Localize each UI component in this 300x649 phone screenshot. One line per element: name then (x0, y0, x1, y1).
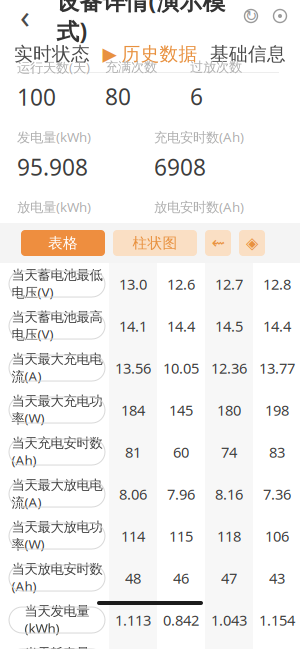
staticText: 当天放电安时数(Ah) (11, 561, 102, 595)
staticText: ‹ (20, 0, 30, 37)
staticText: 设备详情(演示模式) (56, 0, 225, 46)
staticText: 放电安时数(Ah) (154, 198, 244, 216)
staticText: 1.154 (259, 610, 295, 630)
staticText: ◈ (246, 234, 258, 252)
staticText: 118 (217, 526, 241, 546)
staticText: 历史数据 (121, 42, 197, 65)
staticText: 14.4 (263, 316, 291, 336)
staticText: 7.36 (263, 484, 291, 504)
staticText: 6908 (154, 152, 206, 182)
staticText: 43 (269, 568, 285, 588)
staticText: 当天最大放电功率(W) (11, 519, 102, 553)
staticText: 106 (265, 526, 289, 546)
staticText: 当天发电量(kWh) (24, 603, 89, 637)
staticText: 过放次数 (190, 59, 242, 75)
staticText: ⇜ (211, 234, 224, 252)
staticText: 81 (125, 442, 141, 462)
staticText: 当天蓄电池最高电压(V) (11, 309, 102, 343)
staticText: ▶ (102, 43, 116, 65)
button[interactable]: 分享 (205, 230, 231, 256)
staticText: 74 (221, 442, 237, 462)
staticText: 表格 (48, 234, 78, 252)
staticText: 114 (121, 526, 145, 546)
staticText: 当天最大充电功率(W) (11, 393, 102, 427)
staticText: 放电量(kWh) (17, 198, 91, 216)
staticText: 83 (269, 442, 285, 462)
staticText: 柱状图 (132, 234, 177, 252)
button[interactable]: ▶ (101, 36, 199, 72)
staticText: 95.908 (17, 152, 88, 182)
staticText: 13.56 (115, 358, 151, 378)
staticText: 1.043 (211, 610, 247, 630)
staticText: 14.5 (215, 316, 243, 336)
staticText: 180 (217, 400, 241, 420)
staticText: 184 (121, 400, 145, 420)
staticText: 198 (265, 400, 289, 420)
staticText: 46 (173, 568, 189, 588)
staticText: 运行天数(天) (17, 58, 90, 76)
staticText: 12.7 (215, 274, 243, 294)
staticText: 47 (221, 568, 237, 588)
staticText: 7.96 (167, 484, 195, 504)
staticText: 6 (190, 81, 203, 111)
staticText: 12.6 (167, 274, 195, 294)
staticText: ↻ (245, 8, 257, 24)
staticText: 实时状态 (14, 42, 90, 65)
staticText: 1.113 (115, 610, 151, 630)
button[interactable]: 表格 (21, 230, 105, 256)
button[interactable]: 柱状图 (113, 230, 197, 256)
staticText: 0.842 (163, 610, 199, 630)
staticText: 当天充电安时数(Ah) (11, 435, 102, 469)
button[interactable]: 设置 (265, 0, 295, 36)
staticText: 当天最大充电电流(A) (11, 351, 102, 385)
button[interactable]: 主题 (239, 230, 265, 256)
staticText: 充电安时数(Ah) (154, 128, 244, 146)
staticText: 8.16 (215, 484, 243, 504)
button[interactable]: 刷新 (237, 0, 265, 36)
staticText: 当天最大放电电流(A) (11, 477, 102, 511)
staticText: 发电量(kWh) (17, 128, 91, 146)
staticText: 充满次数 (105, 59, 157, 75)
staticText: 13.0 (119, 274, 147, 294)
staticText: 60 (173, 442, 189, 462)
staticText: 100 (17, 82, 56, 112)
staticText: 80 (105, 81, 131, 111)
staticText: 10.05 (163, 358, 199, 378)
button[interactable]: 实时状态 (3, 36, 101, 72)
staticText: 66.677 (17, 222, 88, 252)
staticText: 基础信息 (210, 42, 286, 65)
staticText: 13.77 (259, 358, 295, 378)
staticText: 当天蓄电池最低电压(V) (11, 267, 102, 301)
staticText: 48 (125, 568, 141, 588)
staticText: 14.1 (119, 316, 147, 336)
button[interactable]: 基础信息 (199, 36, 297, 72)
staticText: 14.4 (167, 316, 195, 336)
staticText: 8.06 (119, 484, 147, 504)
staticText: 12.8 (263, 274, 291, 294)
staticText: 4770 (154, 222, 206, 252)
staticText: 12.36 (211, 358, 247, 378)
staticText: 115 (169, 526, 193, 546)
staticText: 当天耗电量(kWh) (24, 645, 89, 649)
staticText: 145 (169, 400, 193, 420)
button[interactable]: 返回 (5, 0, 45, 36)
